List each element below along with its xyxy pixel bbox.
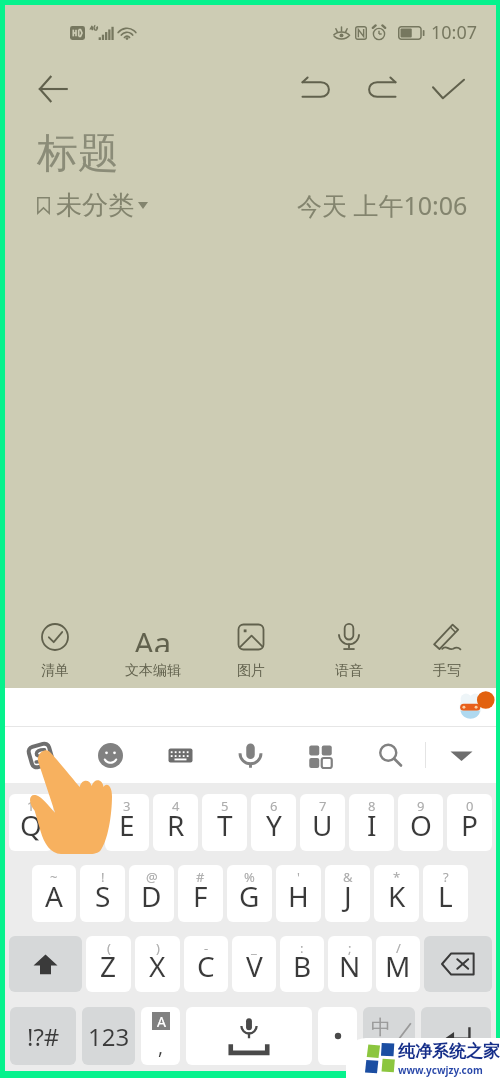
staticText: 清单 xyxy=(41,662,69,680)
staticText: ? xyxy=(443,868,449,886)
staticText: T xyxy=(217,806,233,844)
button[interactable]: Chinese English toggle xyxy=(363,1007,415,1065)
button[interactable]: 4 xyxy=(153,794,198,851)
staticText: ~ xyxy=(50,868,58,886)
staticText: F xyxy=(193,877,208,915)
button[interactable]: 123 xyxy=(82,1007,135,1065)
staticText: 0 xyxy=(466,797,474,815)
staticText: # xyxy=(196,868,205,886)
staticText: / xyxy=(396,939,401,957)
staticText: !?# xyxy=(27,1020,60,1053)
staticText: 123 xyxy=(88,1020,130,1053)
button[interactable]: Done xyxy=(424,65,472,113)
button[interactable]: # xyxy=(178,865,223,922)
button[interactable]: Search xyxy=(355,727,425,783)
button[interactable]: 7 xyxy=(300,794,345,851)
button[interactable]: 手写 xyxy=(398,613,496,688)
staticText: 8 xyxy=(368,797,376,815)
button[interactable]: ; xyxy=(328,936,372,992)
staticText: R xyxy=(167,806,185,844)
button[interactable]: ) xyxy=(135,936,180,992)
button[interactable]: More xyxy=(285,727,355,783)
staticText: 9 xyxy=(417,797,425,815)
staticText: * xyxy=(393,868,401,886)
button[interactable]: : xyxy=(280,936,324,992)
button[interactable]: 0 xyxy=(447,794,492,851)
button[interactable]: 9 xyxy=(398,794,443,851)
staticText: Z xyxy=(100,947,117,985)
button[interactable]: 1 xyxy=(9,794,53,851)
staticText: J xyxy=(344,877,352,915)
button[interactable]: Redo xyxy=(358,65,406,113)
staticText: ! xyxy=(101,868,105,886)
staticText: & xyxy=(343,868,353,886)
button[interactable]: Emoji xyxy=(75,727,145,783)
staticText: 10:07 xyxy=(431,20,478,45)
button[interactable]: Voice input xyxy=(215,727,285,783)
button[interactable]: Hide keyboard xyxy=(426,727,496,783)
staticText: L xyxy=(438,877,453,915)
staticText: 4 xyxy=(172,797,180,815)
button[interactable]: - xyxy=(184,936,228,992)
button[interactable]: / xyxy=(376,936,420,992)
staticText: 纯净系统之家 xyxy=(398,1041,500,1062)
button[interactable]: & xyxy=(325,865,370,922)
button[interactable]: Input method xyxy=(5,727,75,783)
staticText: A xyxy=(45,877,63,915)
button[interactable]: Undo xyxy=(292,65,340,113)
button[interactable]: Shift xyxy=(9,936,82,992)
button[interactable]: 语音 xyxy=(300,613,398,688)
staticText: 文本编辑 xyxy=(125,662,181,680)
staticText: ; xyxy=(348,939,352,957)
button[interactable]: 3 xyxy=(105,794,149,851)
staticText: G xyxy=(239,877,260,915)
staticText: Aa xyxy=(134,622,172,652)
button[interactable]: 未分类 xyxy=(37,189,148,222)
staticText: B xyxy=(293,947,312,985)
staticText: , xyxy=(158,1034,164,1060)
button[interactable]: 6 xyxy=(251,794,296,851)
staticText: A xyxy=(157,1012,166,1030)
staticText: % xyxy=(244,868,255,886)
staticText: 1 xyxy=(27,797,35,815)
staticText: _ xyxy=(251,939,257,957)
staticText: P xyxy=(461,806,478,844)
button[interactable]: Period xyxy=(318,1007,357,1065)
button[interactable]: ! xyxy=(80,865,125,922)
staticText: V xyxy=(246,947,263,985)
button[interactable]: 8 xyxy=(349,794,394,851)
staticText: 中 xyxy=(371,1015,391,1040)
staticText: : xyxy=(300,939,304,957)
button[interactable]: Keyboard xyxy=(145,727,215,783)
button[interactable]: % xyxy=(227,865,272,922)
staticText: 语音 xyxy=(335,662,363,680)
staticText: S xyxy=(95,877,111,915)
button[interactable]: _ xyxy=(232,936,276,992)
button[interactable]: 5 xyxy=(202,794,247,851)
button[interactable]: Space xyxy=(186,1007,312,1065)
button[interactable]: ~ xyxy=(32,865,76,922)
button[interactable]: ( xyxy=(86,936,131,992)
staticText: N xyxy=(339,947,361,985)
button[interactable]: 清单 xyxy=(5,613,104,688)
staticText: ' xyxy=(297,868,300,886)
button[interactable]: New feature xyxy=(453,691,495,723)
button[interactable]: Enter xyxy=(421,1007,491,1065)
button[interactable]: !?# xyxy=(10,1007,76,1065)
button[interactable]: Back xyxy=(29,65,77,113)
staticText: Y xyxy=(266,806,282,844)
staticText: @ xyxy=(146,868,158,886)
button[interactable]: ? xyxy=(423,865,468,922)
button[interactable]: Backspace xyxy=(424,936,492,992)
button[interactable]: Aa xyxy=(104,613,202,688)
button[interactable]: * xyxy=(374,865,419,922)
button[interactable]: 图片 xyxy=(202,613,300,688)
button[interactable]: @ xyxy=(129,865,174,922)
button[interactable]: Comma xyxy=(141,1007,180,1065)
button[interactable]: ' xyxy=(276,865,321,922)
staticText: K xyxy=(388,877,406,915)
staticText: ( xyxy=(107,939,111,957)
